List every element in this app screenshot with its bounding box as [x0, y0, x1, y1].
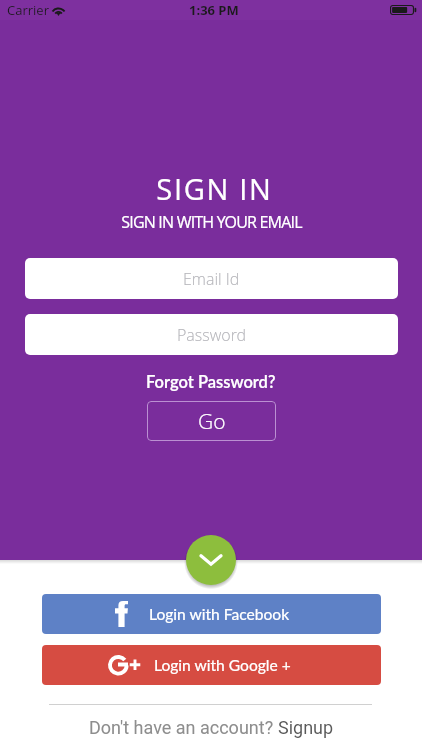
staticText: SIGN IN	[156, 169, 273, 208]
staticText: SIGN IN WITH YOUR EMAIL	[121, 211, 302, 233]
staticText: Email Id	[183, 268, 240, 290]
staticText: 1:36 PM	[189, 1, 239, 19]
button[interactable]: Password	[25, 314, 398, 355]
staticText: Password	[177, 324, 247, 346]
button[interactable]: Login with Facebook	[42, 594, 381, 634]
staticText: Signup	[278, 717, 334, 738]
staticText: Forgot Password?	[146, 372, 276, 392]
staticText: Login with Facebook	[149, 605, 290, 624]
staticText: Login with Google +	[154, 656, 291, 675]
button[interactable]: Scroll down	[186, 535, 236, 585]
button[interactable]: Login with Google +	[42, 645, 381, 685]
staticText: Carrier	[7, 1, 49, 19]
button[interactable]: Signup	[278, 717, 334, 738]
button[interactable]: Forgot Password?	[142, 370, 280, 394]
staticText: Go	[198, 407, 226, 436]
button[interactable]: Email Id	[25, 258, 398, 299]
button[interactable]: Go	[147, 401, 276, 441]
staticText: Don't have an account?	[89, 717, 278, 738]
